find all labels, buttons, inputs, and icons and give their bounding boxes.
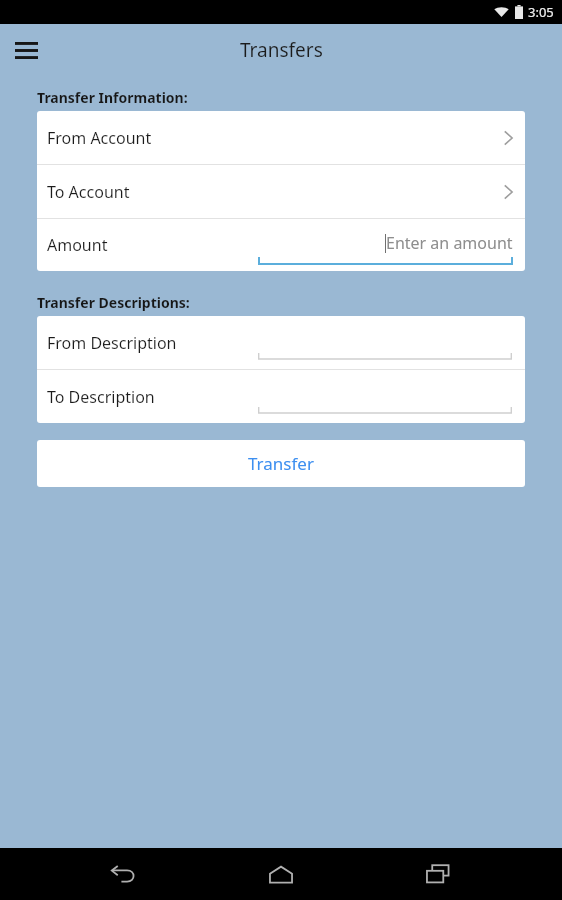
staticText: 3:05 — [528, 3, 554, 21]
button[interactable]: Amount — [37, 219, 525, 271]
button[interactable]: To Account — [37, 165, 525, 218]
staticText: Amount — [47, 234, 108, 256]
staticText: Transfer Descriptions: — [37, 293, 190, 312]
button[interactable]: From Description — [37, 316, 525, 369]
button[interactable]: Transfer — [37, 440, 525, 487]
staticText: Enter an amount — [386, 232, 513, 254]
button[interactable]: Open navigation menu — [6, 30, 46, 70]
staticText: To Description — [47, 386, 155, 408]
button[interactable]: From Account — [37, 111, 525, 164]
button[interactable]: Home — [257, 850, 305, 898]
staticText: To Account — [47, 181, 130, 203]
staticText: Transfer Information: — [37, 88, 188, 107]
staticText: From Description — [47, 332, 177, 354]
button[interactable]: Recent apps — [414, 850, 462, 898]
button[interactable]: Back — [100, 850, 148, 898]
staticText: From Account — [47, 127, 152, 149]
button[interactable]: To Description — [37, 370, 525, 423]
staticText: Transfers — [240, 37, 323, 63]
staticText: Transfer — [248, 452, 314, 475]
